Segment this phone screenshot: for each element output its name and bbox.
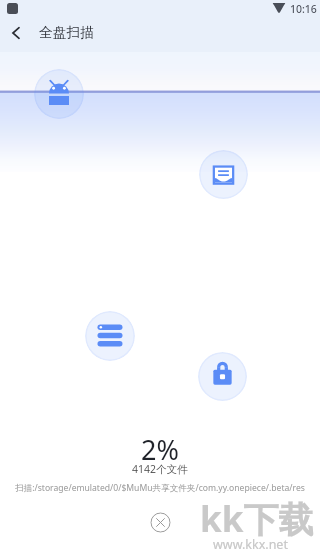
button[interactable]: Privacy — [198, 352, 247, 401]
staticText: 10:16 — [290, 2, 317, 16]
staticText: 扫描:/storage/emulated/0/$MuMu共享文件夹/com.yy… — [15, 482, 305, 494]
button[interactable]: Messages — [199, 150, 248, 199]
button[interactable]: Stop scan — [150, 512, 171, 533]
button[interactable]: Back — [0, 17, 32, 49]
button[interactable]: Files — [85, 311, 135, 361]
staticText: 4142个文件 — [132, 462, 188, 476]
staticText: www.kkx.net — [213, 536, 288, 550]
staticText: kk下载 — [200, 495, 314, 543]
staticText: 全盘扫描 — [39, 24, 95, 41]
staticText: 2% — [141, 431, 179, 468]
button[interactable]: Apps — [34, 69, 84, 119]
